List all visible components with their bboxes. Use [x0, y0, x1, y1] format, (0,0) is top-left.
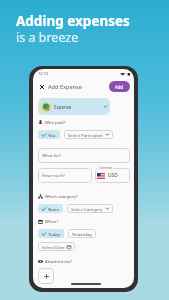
staticText: When? — [45, 219, 59, 224]
staticText: You — [48, 132, 56, 138]
staticText: Yesterday — [72, 231, 92, 237]
staticText: Select Participant — [68, 132, 103, 138]
button[interactable]: None — [42, 204, 59, 213]
staticText: USD — [108, 172, 118, 179]
staticText: Attachments? — [45, 259, 72, 264]
button[interactable]: Select Date — [42, 242, 71, 251]
staticText: Expense — [54, 104, 72, 110]
staticText: Select Category — [71, 206, 103, 212]
button[interactable]: How much? — [42, 168, 88, 183]
button[interactable]: Add attachment — [38, 268, 54, 284]
staticText: Add Expense — [48, 83, 82, 91]
staticText: Add — [115, 84, 124, 90]
button[interactable]: Expense — [41, 98, 107, 115]
button[interactable]: Select Participant — [68, 130, 109, 139]
button[interactable]: Add — [109, 81, 130, 92]
staticText: is a breeze — [16, 29, 79, 46]
button[interactable]: Today — [42, 229, 60, 238]
button[interactable]: Close — [37, 82, 46, 91]
staticText: Select Date — [42, 244, 65, 250]
staticText: How much? — [42, 173, 65, 179]
staticText: Who paid? — [45, 120, 66, 125]
button[interactable]: USD — [97, 168, 128, 183]
staticText: What for? — [42, 153, 61, 159]
staticText: Adding expenses — [16, 12, 130, 30]
staticText: Which category? — [45, 194, 78, 199]
button[interactable]: Select Category — [71, 204, 109, 213]
staticText: 12:15 — [38, 71, 49, 76]
button[interactable]: Yesterday — [72, 229, 92, 238]
staticText: Today — [48, 231, 60, 237]
staticText: Currency — [99, 166, 112, 170]
staticText: None — [48, 206, 59, 212]
button[interactable]: What for? — [42, 148, 126, 163]
button[interactable]: You — [42, 130, 56, 139]
